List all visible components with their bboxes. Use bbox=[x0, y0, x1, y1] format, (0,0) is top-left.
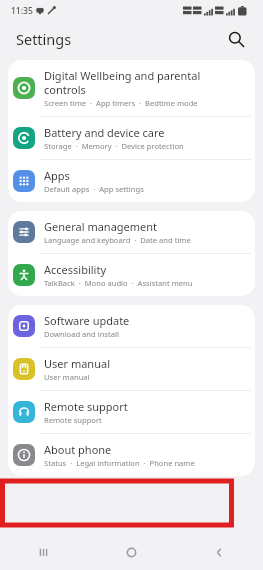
button[interactable]: Back bbox=[175, 534, 263, 570]
staticText: Software update bbox=[44, 313, 130, 328]
button[interactable]: About phone bbox=[8, 434, 255, 476]
staticText: Accessibility bbox=[44, 262, 107, 277]
staticText: Language and keyboard · Date and time bbox=[44, 235, 191, 245]
staticText: Screen time · App timers · Bedtime mode bbox=[44, 98, 198, 108]
button[interactable]: Software update bbox=[8, 305, 255, 347]
staticText: Remote support bbox=[44, 399, 128, 414]
button[interactable]: Digital Wellbeing and parental controls bbox=[8, 60, 255, 116]
staticText: 11:35 bbox=[11, 5, 33, 17]
button[interactable]: Battery and device care bbox=[8, 117, 255, 159]
button[interactable]: Search settings bbox=[221, 24, 251, 54]
button[interactable]: Home bbox=[87, 534, 175, 570]
staticText: TalkBack · Mono audio · Assistant menu bbox=[44, 278, 193, 288]
staticText: Remote support bbox=[44, 415, 102, 425]
staticText: General management bbox=[44, 219, 158, 234]
staticText: Download and install bbox=[44, 329, 119, 339]
staticText: Battery and device care bbox=[44, 125, 165, 140]
staticText: Apps bbox=[44, 168, 70, 183]
staticText: Status · Legal information · Phone name bbox=[44, 458, 195, 468]
staticText: Default apps · App settings bbox=[44, 184, 144, 194]
button[interactable]: Recent apps bbox=[0, 534, 87, 570]
button[interactable]: Accessibility bbox=[8, 254, 255, 296]
button[interactable]: General management bbox=[8, 211, 255, 253]
staticText: User manual bbox=[44, 372, 90, 382]
staticText: About phone bbox=[44, 442, 112, 457]
staticText: Storage · Memory · Device protection bbox=[44, 141, 184, 151]
staticText: Digital Wellbeing and parental controls bbox=[44, 68, 201, 97]
staticText: Settings bbox=[16, 29, 72, 49]
button[interactable]: Apps bbox=[8, 160, 255, 202]
button[interactable]: Remote support bbox=[8, 391, 255, 433]
button[interactable]: User manual bbox=[8, 348, 255, 390]
staticText: User manual bbox=[44, 356, 110, 371]
